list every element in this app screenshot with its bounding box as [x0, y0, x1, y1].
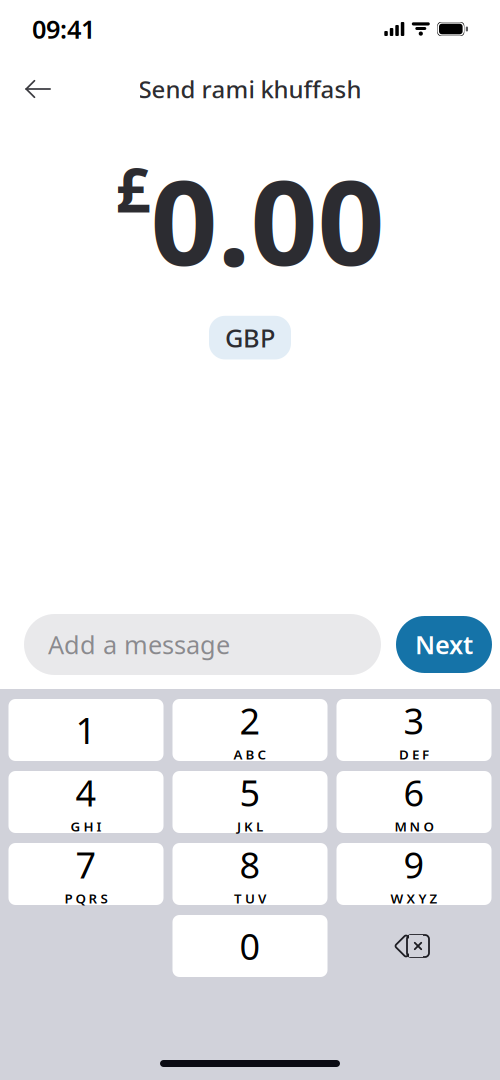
button[interactable]: Back — [14, 65, 62, 113]
button[interactable]: 8 — [172, 843, 327, 905]
staticText: 3 — [403, 697, 424, 744]
button[interactable]: Add a message — [24, 614, 381, 675]
staticText: 09:41 — [32, 12, 95, 46]
staticText: 4 — [75, 769, 96, 816]
button[interactable]: Next — [396, 616, 492, 673]
staticText: Send rami khuffash — [138, 73, 361, 105]
staticText: J K L — [237, 818, 263, 835]
button[interactable]: 1 — [8, 699, 163, 761]
staticText: P Q R S — [64, 890, 107, 907]
staticText: 0 — [239, 922, 260, 970]
staticText: 9 — [403, 841, 424, 888]
staticText: T U V — [234, 890, 266, 907]
staticText: D E F — [399, 746, 429, 763]
staticText: G H I — [70, 818, 101, 835]
button[interactable]: Delete — [336, 915, 491, 977]
staticText: M N O — [394, 818, 433, 835]
staticText: 1 — [75, 706, 96, 754]
staticText: 0.00 — [150, 142, 384, 298]
staticText: 7 — [75, 841, 96, 888]
button[interactable]: 9 — [336, 843, 491, 905]
staticText: 6 — [403, 769, 424, 816]
staticText: £ — [115, 148, 150, 229]
staticText: GBP — [225, 321, 275, 354]
staticText: Add a message — [48, 628, 230, 661]
staticText: Next — [415, 628, 473, 661]
button[interactable]: 3 — [336, 699, 491, 761]
button[interactable]: 4 — [8, 771, 163, 833]
button[interactable]: 0 — [172, 915, 327, 977]
staticText: A B C — [233, 746, 266, 763]
button[interactable]: 7 — [8, 843, 163, 905]
button[interactable]: 6 — [336, 771, 491, 833]
staticText: 8 — [239, 841, 260, 888]
staticText: W X Y Z — [390, 890, 437, 907]
button[interactable]: 5 — [172, 771, 327, 833]
staticText: 5 — [239, 769, 260, 816]
button[interactable]: 2 — [172, 699, 327, 761]
staticText: 2 — [239, 697, 260, 744]
